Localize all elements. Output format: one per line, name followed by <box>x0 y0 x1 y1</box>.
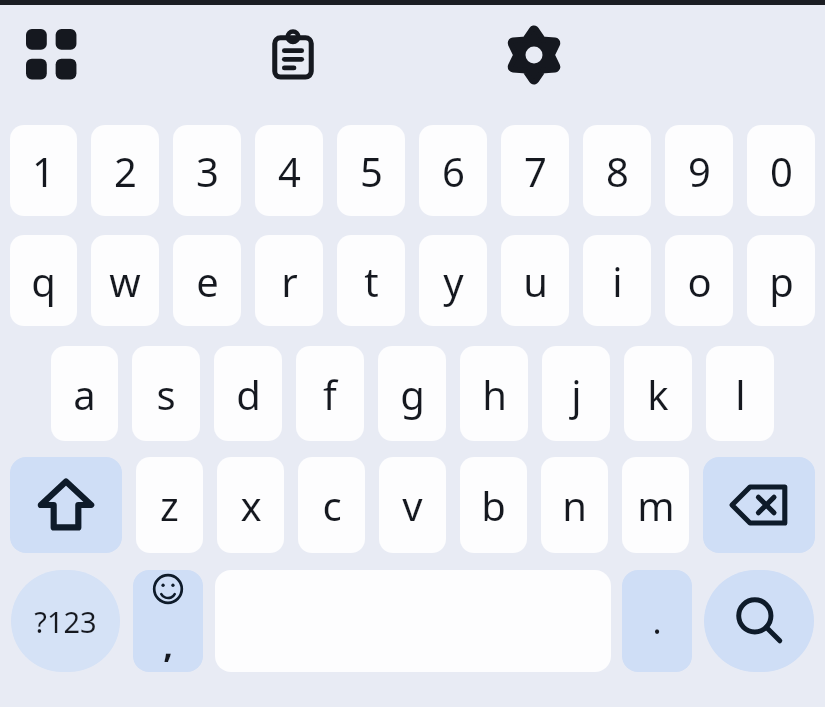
staticText: 4 <box>278 144 301 198</box>
button[interactable]: q <box>10 235 77 326</box>
staticText: n <box>562 478 587 532</box>
staticText: 1 <box>32 144 55 198</box>
button[interactable]: b <box>460 457 527 553</box>
button[interactable]: h <box>460 346 528 441</box>
button[interactable]: Keyboard layouts <box>14 17 90 93</box>
button[interactable]: . <box>622 570 692 672</box>
button[interactable]: m <box>622 457 689 553</box>
button[interactable]: 2 <box>91 125 159 216</box>
staticText: t <box>364 254 379 308</box>
button[interactable]: 0 <box>747 125 815 216</box>
staticText: ?123 <box>34 602 97 641</box>
button[interactable]: n <box>541 457 608 553</box>
button[interactable]: y <box>419 235 487 326</box>
button[interactable]: p <box>747 235 815 326</box>
button[interactable]: 6 <box>419 125 487 216</box>
button[interactable]: 3 <box>173 125 241 216</box>
staticText: u <box>523 254 548 308</box>
staticText: x <box>240 478 262 532</box>
staticText: i <box>612 254 623 308</box>
button[interactable]: 5 <box>337 125 405 216</box>
staticText: f <box>323 367 337 421</box>
button[interactable]: t <box>337 235 405 326</box>
staticText: w <box>109 254 141 308</box>
button[interactable]: l <box>706 346 774 441</box>
button[interactable]: c <box>298 457 365 553</box>
staticText: 8 <box>606 144 629 198</box>
staticText: k <box>647 367 669 421</box>
staticText: 5 <box>360 144 383 198</box>
button[interactable]: 8 <box>583 125 651 216</box>
staticText: 7 <box>524 144 547 198</box>
button[interactable]: z <box>136 457 203 553</box>
button[interactable]: s <box>132 346 200 441</box>
button[interactable]: Backspace <box>703 457 815 553</box>
staticText: 6 <box>442 144 465 198</box>
button[interactable]: v <box>379 457 446 553</box>
button[interactable]: 4 <box>255 125 323 216</box>
staticText: h <box>482 367 507 421</box>
staticText: d <box>236 367 261 421</box>
staticText: b <box>481 478 506 532</box>
staticText: j <box>571 367 582 421</box>
button[interactable]: k <box>624 346 692 441</box>
staticText: s <box>156 367 176 421</box>
button[interactable]: j <box>542 346 610 441</box>
staticText: l <box>735 367 746 421</box>
button[interactable]: 7 <box>501 125 569 216</box>
button[interactable]: i <box>583 235 651 326</box>
button[interactable]: Search <box>704 570 814 672</box>
button[interactable]: Shift <box>10 457 122 553</box>
staticText: g <box>400 367 425 421</box>
staticText: 0 <box>770 144 793 198</box>
staticText: p <box>769 254 794 308</box>
button[interactable]: r <box>255 235 323 326</box>
button[interactable]: w <box>91 235 159 326</box>
button[interactable]: Emoji and comma <box>133 570 203 672</box>
staticText: o <box>687 254 712 308</box>
staticText: c <box>322 478 342 532</box>
staticText: v <box>402 478 423 532</box>
button[interactable]: o <box>665 235 733 326</box>
staticText: r <box>281 254 298 308</box>
staticText: a <box>73 367 96 421</box>
button[interactable]: f <box>296 346 364 441</box>
staticText: 2 <box>114 144 137 198</box>
staticText: 3 <box>196 144 219 198</box>
button[interactable]: ?123 <box>11 570 120 672</box>
button[interactable]: Clipboard <box>255 17 331 93</box>
button[interactable]: e <box>173 235 241 326</box>
button[interactable]: g <box>378 346 446 441</box>
button[interactable]: Settings <box>496 17 572 93</box>
staticText: q <box>31 254 56 308</box>
button[interactable]: 1 <box>10 125 77 216</box>
staticText: z <box>160 478 179 532</box>
button[interactable]: u <box>501 235 569 326</box>
staticText: e <box>196 254 219 308</box>
staticText: , <box>163 622 173 668</box>
staticText: . <box>652 598 662 644</box>
staticText: 9 <box>688 144 711 198</box>
button[interactable]: 9 <box>665 125 733 216</box>
staticText: m <box>637 478 675 532</box>
button[interactable]: a <box>51 346 118 441</box>
button[interactable]: x <box>217 457 284 553</box>
staticText: y <box>443 254 464 308</box>
button[interactable]: d <box>214 346 282 441</box>
